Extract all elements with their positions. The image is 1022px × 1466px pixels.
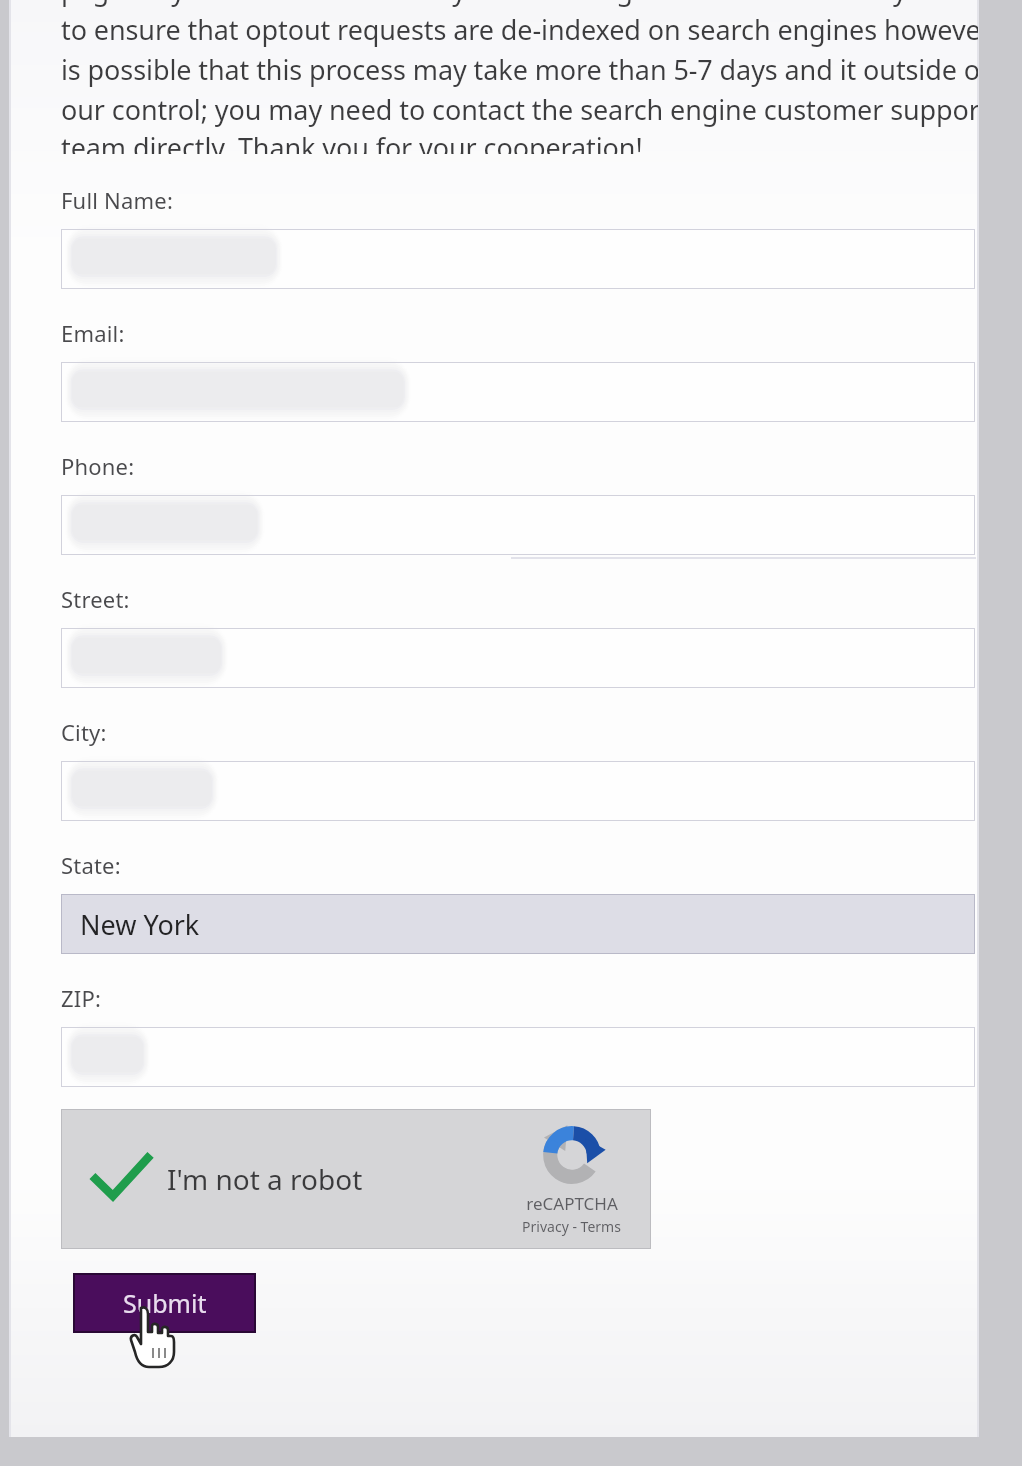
staticText: Privacy - Terms [522,1217,621,1236]
button[interactable]: I'm not a robot [61,1109,651,1249]
other: Pointer [129,1306,175,1368]
staticText: Phone: [61,451,135,481]
button[interactable] [61,229,975,289]
staticText: Full Name: [61,185,174,215]
staticText: I'm not a robot [167,1160,363,1198]
staticText: to ensure that optout requests are de-in… [61,11,978,48]
staticText: is possible that this process may take m… [61,51,978,88]
staticText: New York [80,906,200,943]
button[interactable] [61,495,975,555]
staticText: Street: [61,584,130,614]
staticText: State: [61,850,121,880]
staticText: page may have been indexed by a search e… [61,0,978,8]
staticText: reCAPTCHA [526,1192,618,1215]
button[interactable]: Submit [73,1273,256,1333]
button[interactable] [61,362,975,422]
staticText: Email: [61,318,125,348]
button[interactable]: New York [61,894,975,954]
button[interactable] [61,761,975,821]
staticText: ZIP: [61,983,102,1013]
button[interactable] [61,1027,975,1087]
staticText: team directly. Thank you for your cooper… [61,129,643,154]
staticText: our control; you may need to contact the… [61,91,978,128]
staticText: City: [61,717,107,747]
button[interactable] [61,628,975,688]
staticText: Submit [123,1286,207,1320]
